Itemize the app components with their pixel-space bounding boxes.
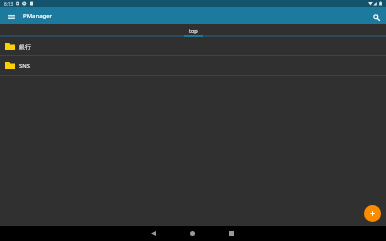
button[interactable]: 銀行 <box>0 37 386 56</box>
staticText: SNS <box>19 62 30 70</box>
button[interactable]: Open navigation menu <box>5 10 18 23</box>
button[interactable]: Search <box>370 11 382 23</box>
staticText: 銀行 <box>19 43 31 50</box>
staticText: top <box>189 27 198 34</box>
button[interactable]: Home <box>182 226 202 241</box>
staticText: PManager <box>23 12 53 20</box>
button[interactable]: SNS <box>0 56 386 76</box>
staticText: 6:13 <box>4 1 14 7</box>
button[interactable]: Recent apps <box>221 226 241 241</box>
button[interactable]: Add <box>364 205 381 222</box>
button[interactable]: Back <box>143 226 163 241</box>
button[interactable]: top <box>0 24 386 37</box>
